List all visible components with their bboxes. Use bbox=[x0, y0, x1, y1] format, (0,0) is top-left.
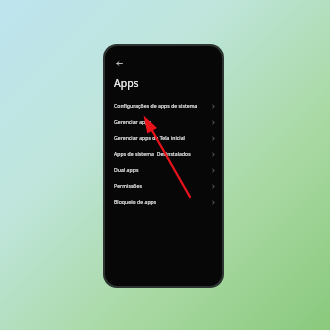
staticText: Apps de sistema Desinstalados bbox=[114, 151, 211, 158]
button[interactable]: Gerenciar apps da Tela inicial bbox=[105, 130, 222, 146]
staticText: Permissões bbox=[114, 183, 211, 190]
button[interactable]: Configurações de apps de sistema bbox=[105, 98, 222, 114]
staticText: Gerenciar apps da Tela inicial bbox=[114, 135, 211, 142]
button[interactable]: Permissões bbox=[105, 178, 222, 194]
button[interactable]: Dual apps bbox=[105, 162, 222, 178]
button[interactable]: Apps de sistema Desinstalados bbox=[105, 146, 222, 162]
button[interactable]: Gerenciar apps bbox=[105, 114, 222, 130]
staticText: Dual apps bbox=[114, 167, 211, 174]
button[interactable]: Back bbox=[113, 57, 125, 69]
staticText: Bloqueio de apps bbox=[114, 199, 211, 206]
staticText: Apps bbox=[114, 76, 139, 90]
staticText: Configurações de apps de sistema bbox=[114, 103, 211, 110]
button[interactable]: Bloqueio de apps bbox=[105, 194, 222, 210]
staticText: Gerenciar apps bbox=[114, 119, 211, 126]
